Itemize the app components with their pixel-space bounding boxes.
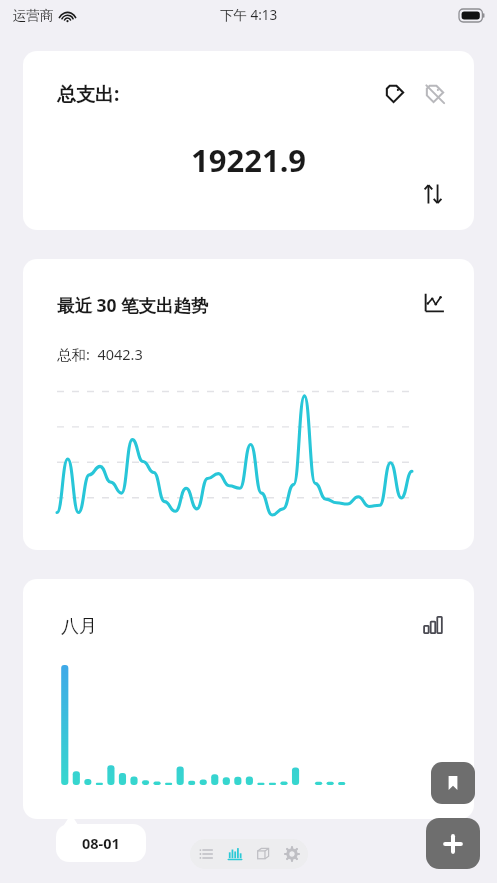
button[interactable]: Books bbox=[250, 841, 276, 867]
button[interactable]: Tag off bbox=[418, 77, 452, 111]
button[interactable]: Tag bbox=[378, 77, 412, 111]
staticText: 八月 bbox=[61, 615, 97, 638]
staticText: 下午 4:13 bbox=[220, 6, 278, 24]
staticText: 总支出: bbox=[57, 81, 120, 107]
button[interactable]: 08-01 bbox=[56, 824, 146, 862]
staticText: 运营商 bbox=[13, 7, 54, 24]
button[interactable]: Settings bbox=[279, 841, 305, 867]
button[interactable]: Chart bbox=[418, 287, 450, 319]
staticText: 总和: 4042.3 bbox=[57, 344, 143, 364]
staticText: 19221.9 bbox=[191, 139, 307, 181]
button[interactable]: Bookmark bbox=[431, 762, 475, 804]
button[interactable]: Bar chart bbox=[416, 609, 448, 641]
button[interactable]: Sort bbox=[416, 177, 450, 211]
button[interactable]: Statistics bbox=[222, 841, 248, 867]
button[interactable]: List bbox=[193, 841, 219, 867]
button[interactable]: Add bbox=[426, 818, 480, 869]
staticText: 最近 30 笔支出趋势 bbox=[57, 293, 209, 317]
staticText: 08-01 bbox=[82, 833, 120, 853]
